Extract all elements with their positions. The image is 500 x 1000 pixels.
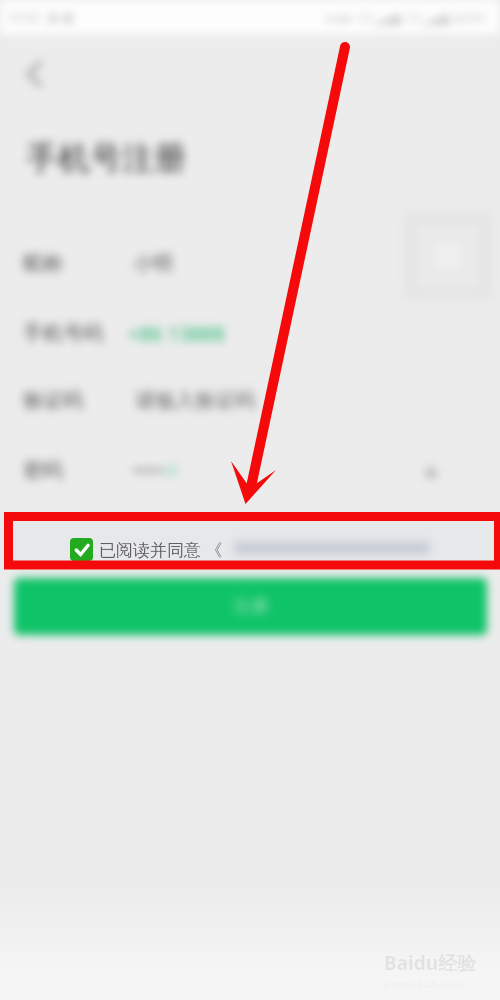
button[interactable]: 昵称 [0,229,500,297]
staticText: ••••• [133,457,171,484]
button[interactable]: 验证码 [0,366,500,434]
staticText: 10:32 ◉ ▣ [7,8,74,26]
button[interactable]: 密码 [0,436,500,504]
button[interactable]: Show password [414,456,448,490]
staticText: 手机号码 [23,321,103,346]
staticText: 请输入验证码 [135,388,255,413]
staticText: ▪ ▪▪ HD ▂▄▆ 4G ▂▄▆ ▮ 86% [326,10,486,25]
staticText: +86 13888 [128,320,225,347]
staticText: Baidu经验 [384,950,477,976]
staticText: 小明 [133,251,173,276]
staticText: 验证码 [23,388,83,413]
staticText: 已阅读并同意 《 [99,538,223,561]
staticText: 注册 [233,595,269,618]
button[interactable]: Back [14,54,54,94]
button[interactable]: 已阅读并同意 《 [70,536,223,562]
button[interactable]: 手机号码 [0,299,500,367]
staticText: 昵称 [23,251,63,276]
button[interactable]: 注册 [14,578,487,635]
staticText: 手机号注册 [26,138,186,178]
staticText: 密码 [23,458,63,483]
